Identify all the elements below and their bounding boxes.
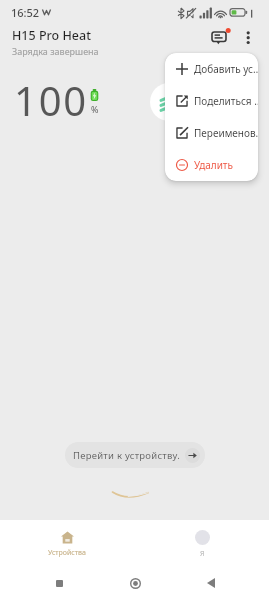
button[interactable]: Переименов…	[165, 117, 258, 149]
button[interactable]: Home	[97, 568, 173, 598]
staticText: 100	[14, 73, 89, 127]
staticText: Переименов…	[194, 126, 258, 140]
staticText: Поделиться …	[194, 94, 258, 108]
staticText: Добавить ус…	[194, 62, 258, 76]
button[interactable]: Удалить	[165, 149, 258, 181]
staticText: %	[91, 103, 99, 115]
button[interactable]: Добавить ус…	[165, 53, 258, 85]
button[interactable]: More options	[235, 23, 261, 49]
button[interactable]: Back	[173, 568, 249, 598]
button[interactable]: Поделиться …	[165, 85, 258, 117]
staticText: Перейти к устройству.	[73, 449, 180, 462]
staticText: Удалить	[194, 158, 233, 172]
staticText: Зарядка завершена	[12, 45, 99, 57]
button[interactable]: Messages	[206, 23, 232, 49]
button[interactable]: Перейти к устройству.	[65, 442, 205, 468]
staticText: H15 Pro Heat	[12, 27, 91, 44]
button[interactable]: Устройства	[21, 523, 113, 565]
staticText: 16:52	[11, 5, 40, 20]
button[interactable]: Я	[156, 523, 248, 565]
staticText: Я	[200, 549, 205, 559]
staticText: Устройства	[48, 548, 86, 558]
button[interactable]: Recents	[21, 568, 97, 598]
